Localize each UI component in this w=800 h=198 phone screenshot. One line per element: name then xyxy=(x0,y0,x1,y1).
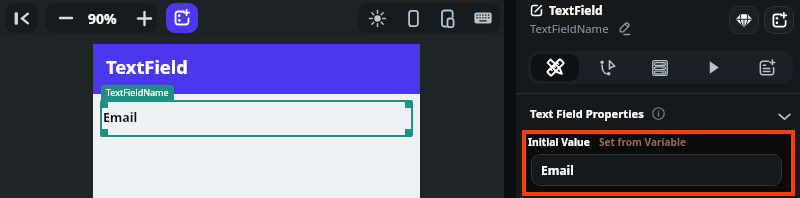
button[interactable]: Rename xyxy=(616,20,632,36)
staticText: Text Field Properties xyxy=(530,106,644,121)
button[interactable]: Text Field Properties xyxy=(516,94,800,130)
staticText: 90% xyxy=(88,9,117,28)
staticText: Set from Variable xyxy=(599,135,686,149)
staticText: Initial Value xyxy=(528,135,590,149)
button[interactable]: Email xyxy=(531,154,782,186)
button[interactable]: 90% xyxy=(81,3,123,33)
button[interactable]: Keyboard xyxy=(465,3,500,33)
button[interactable]: Collapse panel xyxy=(5,3,38,33)
button[interactable]: Add component xyxy=(764,6,794,34)
staticText: TextField xyxy=(106,54,188,79)
staticText: TextField xyxy=(549,2,603,18)
button[interactable]: Logic xyxy=(582,51,634,84)
button[interactable]: Phone preview xyxy=(396,3,430,33)
button[interactable]: Zoom in xyxy=(131,3,157,33)
button[interactable]: Theme xyxy=(358,3,396,33)
button[interactable]: Tablet preview xyxy=(430,3,465,33)
button[interactable]: Email xyxy=(100,100,413,137)
staticText: TextFieldName xyxy=(530,21,609,36)
button[interactable]: Notes xyxy=(741,51,793,84)
button[interactable]: Design xyxy=(531,54,579,81)
button[interactable]: Add component xyxy=(166,3,198,33)
button[interactable]: Run xyxy=(686,51,741,84)
staticText: Email xyxy=(103,109,138,126)
button[interactable]: Premium xyxy=(729,6,759,34)
staticText: TextFieldName xyxy=(106,86,169,98)
staticText: Email xyxy=(541,162,574,178)
button[interactable]: Zoom out xyxy=(53,3,79,33)
button[interactable]: Data xyxy=(634,51,686,84)
